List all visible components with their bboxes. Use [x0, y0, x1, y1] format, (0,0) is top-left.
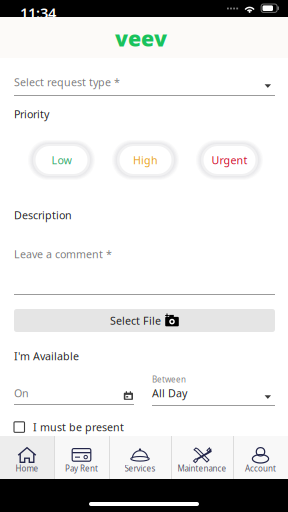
staticText: Low	[51, 153, 71, 167]
button[interactable]: Account	[233, 436, 288, 479]
button[interactable]: Pay Rent	[54, 436, 109, 479]
staticText: Home	[15, 463, 38, 474]
staticText: Pay Rent	[65, 463, 98, 474]
staticText: 11:34	[20, 3, 56, 22]
staticText: Description	[14, 208, 72, 222]
button[interactable]: Urgent	[196, 140, 263, 180]
staticText: On	[14, 386, 29, 400]
staticText: Leave a comment *	[14, 247, 112, 261]
staticText: Account	[245, 463, 276, 474]
button[interactable]: Services	[109, 436, 171, 479]
staticText: Urgent	[211, 153, 247, 167]
button[interactable]: Maintenance	[171, 436, 233, 479]
button[interactable]: I must be present	[14, 420, 275, 434]
staticText: Select request type *	[14, 75, 120, 89]
button[interactable]: Low	[28, 140, 95, 180]
staticText: All Day	[152, 386, 187, 400]
staticText: Services	[124, 463, 155, 474]
staticText: High	[133, 153, 158, 167]
staticText: Between	[152, 374, 186, 385]
button[interactable]: High	[112, 140, 179, 180]
staticText: veev	[115, 24, 167, 52]
staticText: Priority	[14, 107, 49, 121]
staticText: I must be present	[33, 420, 124, 434]
button[interactable]: Select File	[14, 309, 275, 332]
staticText: I'm Available	[14, 349, 79, 363]
button[interactable]: Home	[0, 436, 54, 479]
staticText: Select File	[110, 313, 161, 328]
staticText: Maintenance	[177, 463, 226, 474]
